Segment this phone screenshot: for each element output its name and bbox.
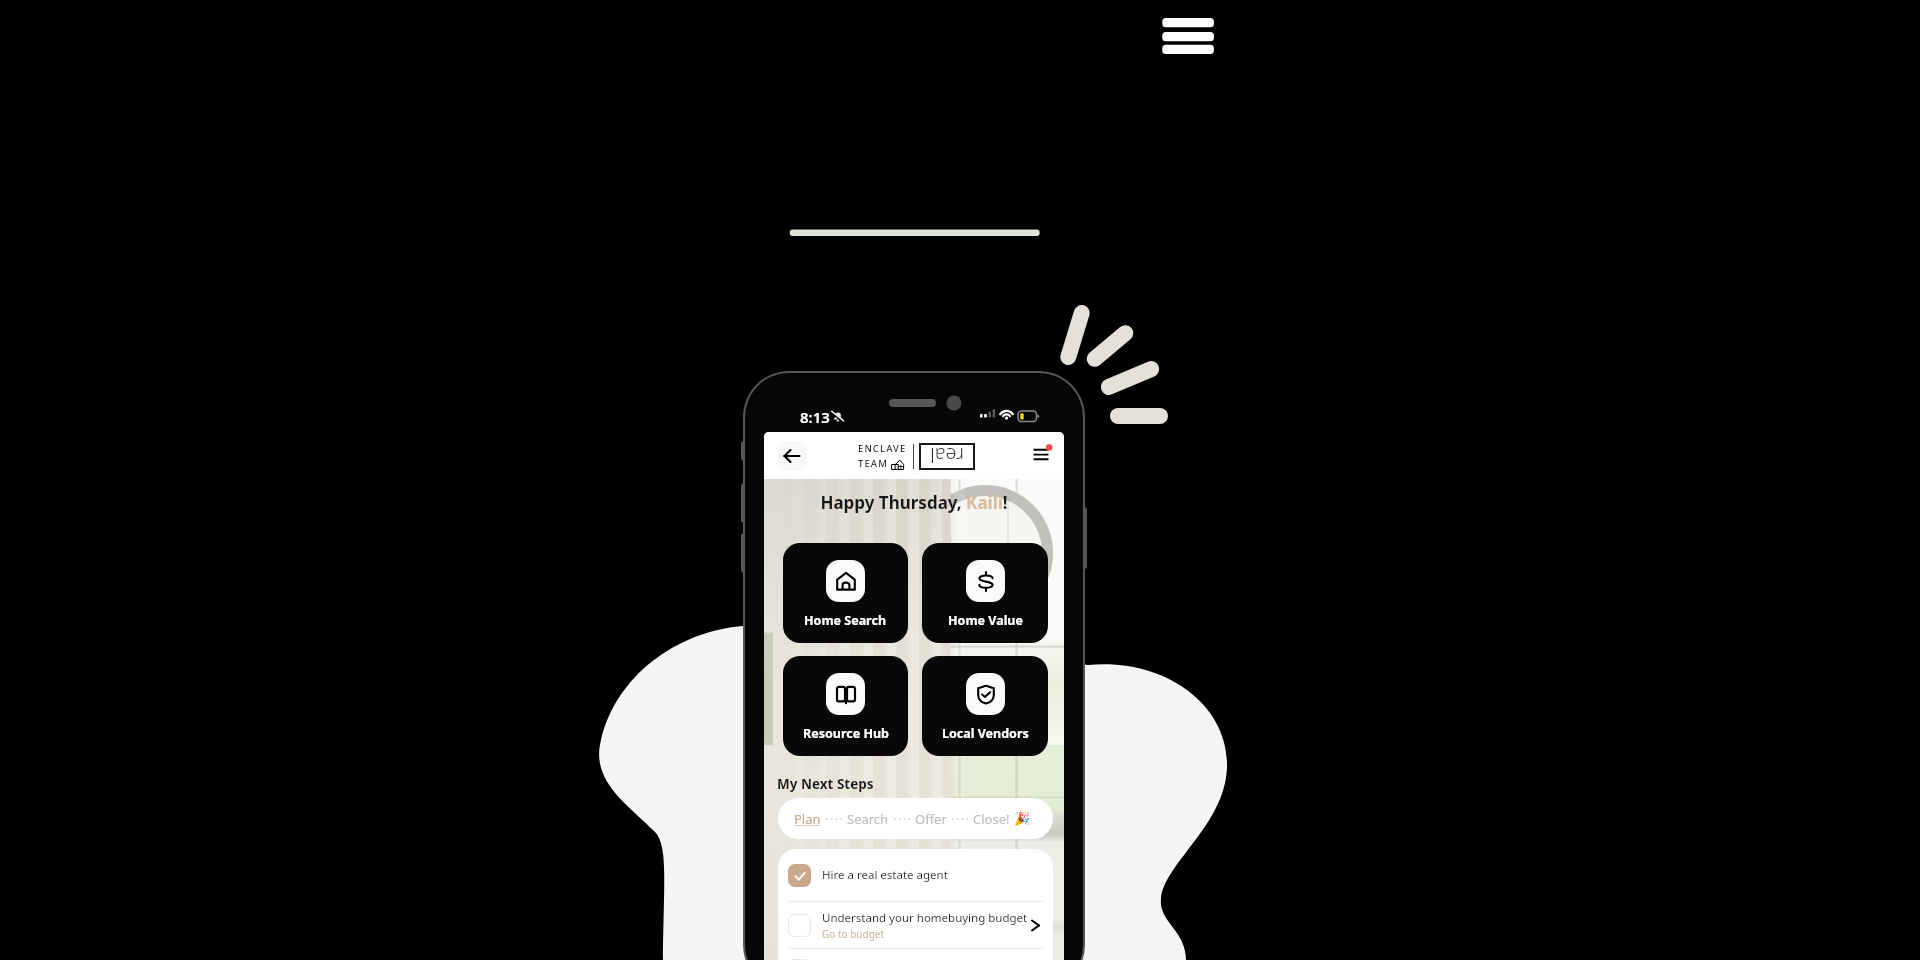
- staticText: TEAM: [858, 457, 888, 470]
- button[interactable]: Offer: [915, 810, 947, 828]
- button[interactable]: Menu: [1029, 443, 1055, 469]
- staticText: Understand your homebuying budget: [822, 910, 1028, 926]
- staticText: 🎉: [1014, 811, 1031, 826]
- staticText: Home Value: [948, 612, 1023, 629]
- button[interactable]: Search: [847, 810, 889, 828]
- staticText: Go to budget: [822, 927, 885, 941]
- button[interactable]: Plan: [794, 810, 821, 828]
- button[interactable]: Resource Hub: [783, 656, 908, 756]
- staticText: real: [930, 444, 964, 469]
- button[interactable]: Local Vendors: [922, 656, 1048, 756]
- staticText: My Next Steps: [777, 775, 874, 793]
- staticText: 8:13: [800, 407, 830, 427]
- staticText: Hire a real estate agent: [822, 867, 948, 883]
- staticText: Resource Hub: [803, 725, 889, 742]
- staticText: Home Search: [804, 612, 887, 629]
- button[interactable]: Home Search: [783, 543, 908, 643]
- button[interactable]: Understand your homebuying budget: [778, 902, 1053, 948]
- staticText: Local Vendors: [942, 725, 1029, 742]
- button[interactable]: Home Value: [922, 543, 1048, 643]
- staticText: Happy Thursday, Kaili!: [764, 491, 1064, 514]
- button[interactable]: Hire a real estate agent: [778, 849, 1053, 901]
- button[interactable]: Back: [777, 441, 807, 471]
- staticText: ENCLAVE: [858, 442, 907, 455]
- button[interactable]: Close!: [973, 810, 1010, 828]
